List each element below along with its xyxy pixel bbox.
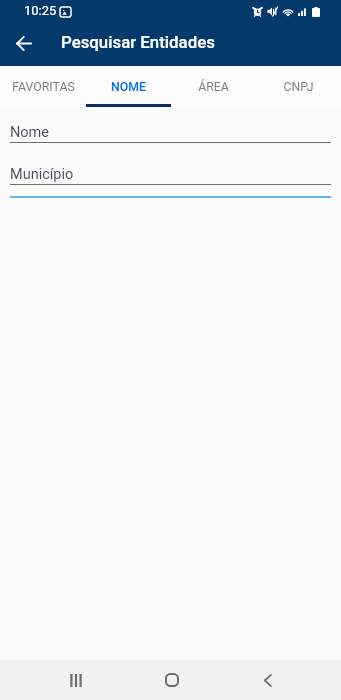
button[interactable]: Nome (10, 124, 50, 141)
button[interactable]: CNPJ (256, 66, 341, 107)
button[interactable]: NOME (86, 66, 171, 107)
staticText: Pesquisar Entidades (61, 32, 215, 52)
button[interactable]: Back (239, 660, 295, 700)
staticText: CNPJ (283, 80, 314, 94)
staticText: FAVORITAS (12, 80, 75, 94)
button[interactable]: Back (5, 25, 41, 61)
staticText: NOME (111, 80, 146, 94)
button[interactable]: Recent apps (48, 660, 104, 700)
button[interactable]: ÁREA (171, 66, 256, 107)
button[interactable]: FAVORITAS (0, 66, 86, 107)
button[interactable]: Home (144, 660, 200, 700)
button[interactable]: Município (10, 166, 74, 183)
staticText: ÁREA (198, 80, 229, 94)
staticText: 10:25 (24, 3, 57, 18)
